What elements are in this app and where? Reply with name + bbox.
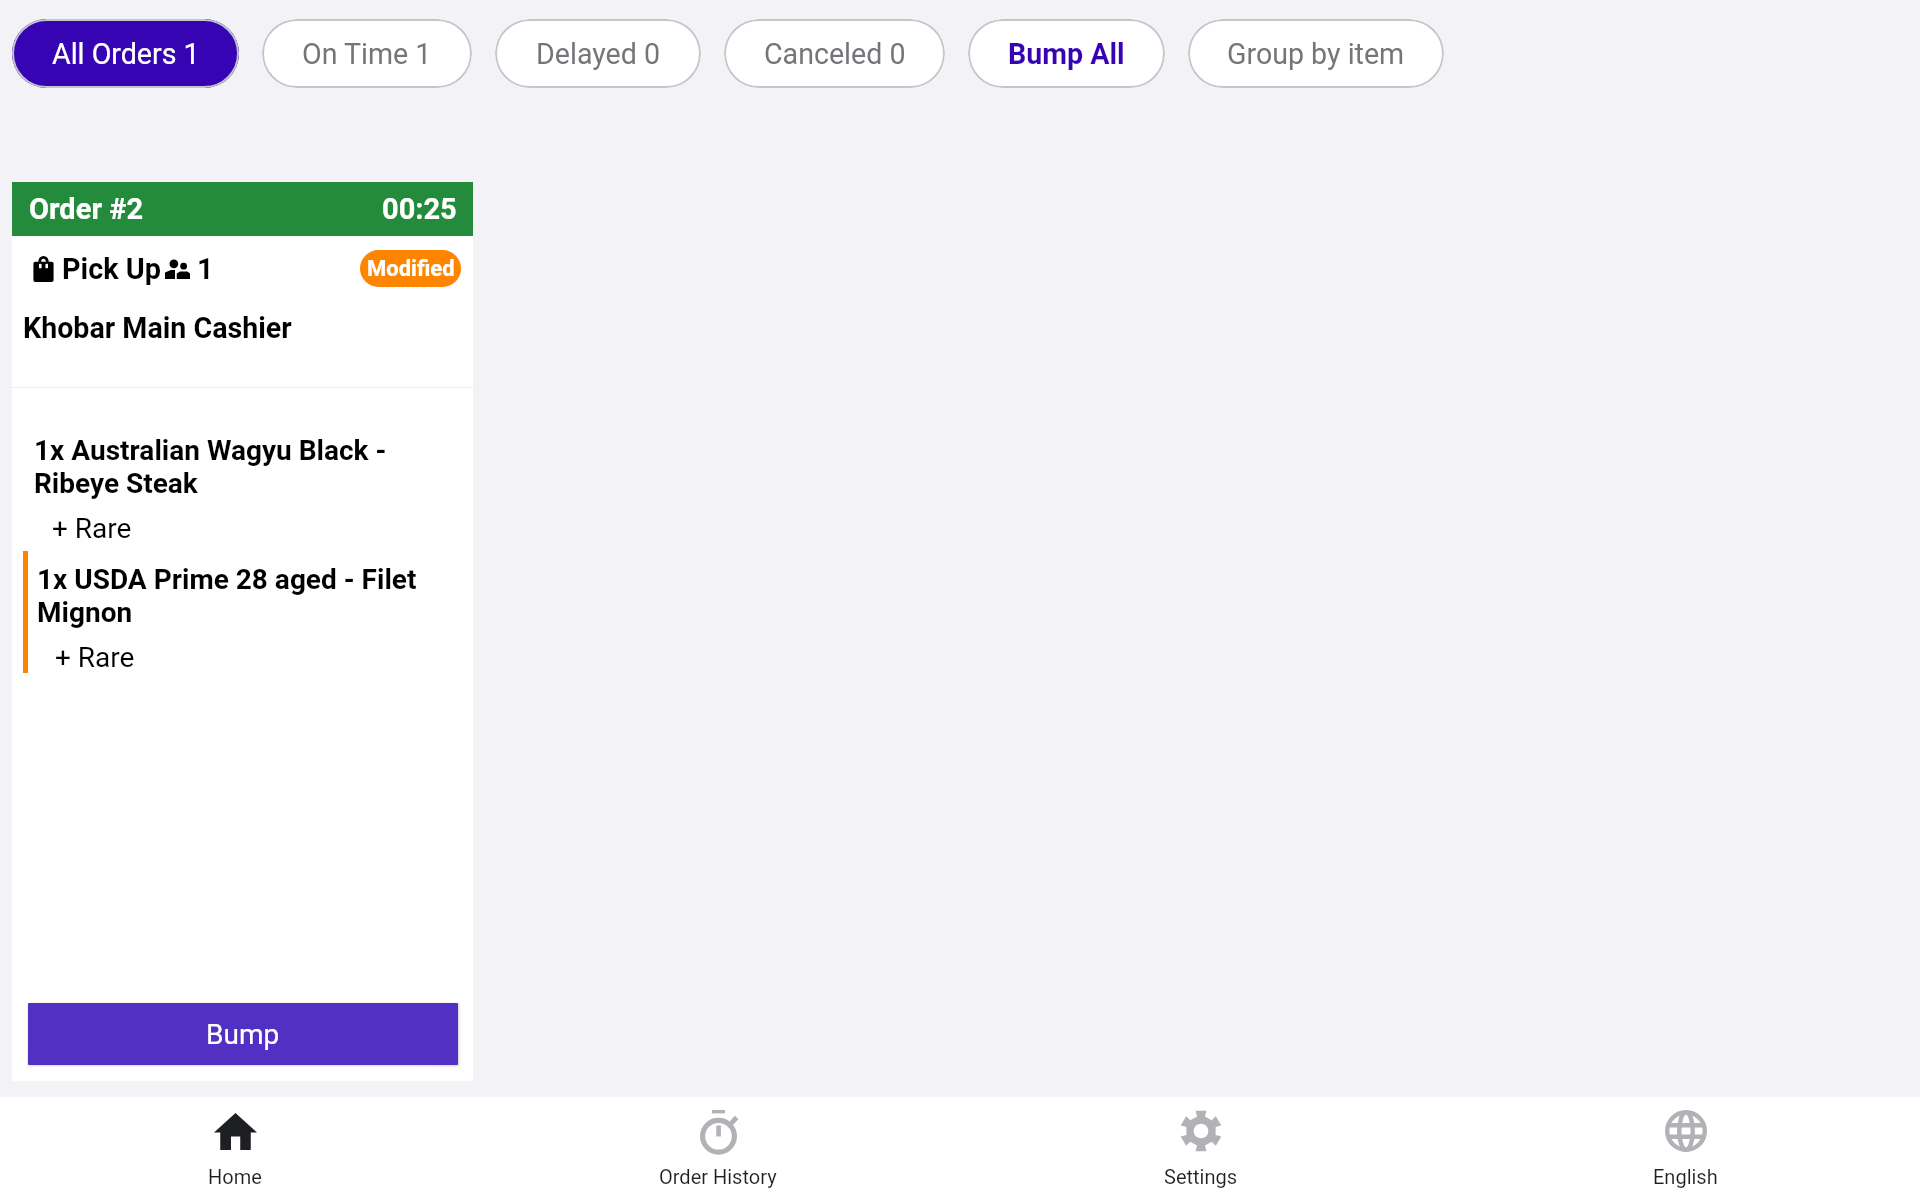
staticText: 1x Australian Wagyu Black - Ribeye Steak (34, 434, 455, 500)
button[interactable]: Group by item (1188, 19, 1444, 88)
staticText: Bump (206, 1018, 280, 1051)
button[interactable]: Bump (28, 1003, 458, 1065)
staticText: Home (208, 1165, 262, 1188)
button[interactable]: Bump All (968, 19, 1165, 88)
other: Home (214, 1113, 257, 1150)
staticText: Bump All (1008, 37, 1125, 71)
staticText: Pick Up (62, 252, 161, 286)
staticText: + Rare (55, 641, 135, 674)
staticText: + Rare (52, 512, 132, 545)
staticText: Delayed 0 (536, 37, 661, 71)
button[interactable]: Home (0, 1097, 476, 1200)
button[interactable]: Settings (959, 1097, 1443, 1200)
button[interactable]: Canceled 0 (724, 19, 945, 88)
other: Order History (700, 1110, 737, 1152)
staticText: English (1653, 1165, 1718, 1188)
staticText: Canceled 0 (764, 37, 906, 71)
staticText: Modified (367, 256, 455, 282)
button[interactable]: Delayed 0 (495, 19, 701, 88)
staticText: 00:25 (382, 192, 457, 226)
staticText: 1x USDA Prime 28 aged - Filet Mignon (37, 563, 455, 629)
staticText: Order History (659, 1165, 777, 1188)
staticText: Order #2 (29, 192, 144, 226)
staticText: All Orders 1 (52, 37, 200, 71)
staticText: Khobar Main Cashier (23, 311, 292, 345)
staticText: Settings (1164, 1165, 1238, 1188)
button[interactable]: Order History (476, 1097, 959, 1200)
staticText: 1 (197, 252, 214, 286)
button[interactable]: English (1443, 1097, 1920, 1200)
other: Settings (1180, 1110, 1222, 1152)
button[interactable]: On Time 1 (262, 19, 472, 88)
staticText: Group by item (1227, 37, 1405, 71)
staticText: On Time 1 (302, 37, 432, 71)
button[interactable]: All Orders 1 (12, 19, 239, 88)
other: English (1665, 1110, 1707, 1152)
